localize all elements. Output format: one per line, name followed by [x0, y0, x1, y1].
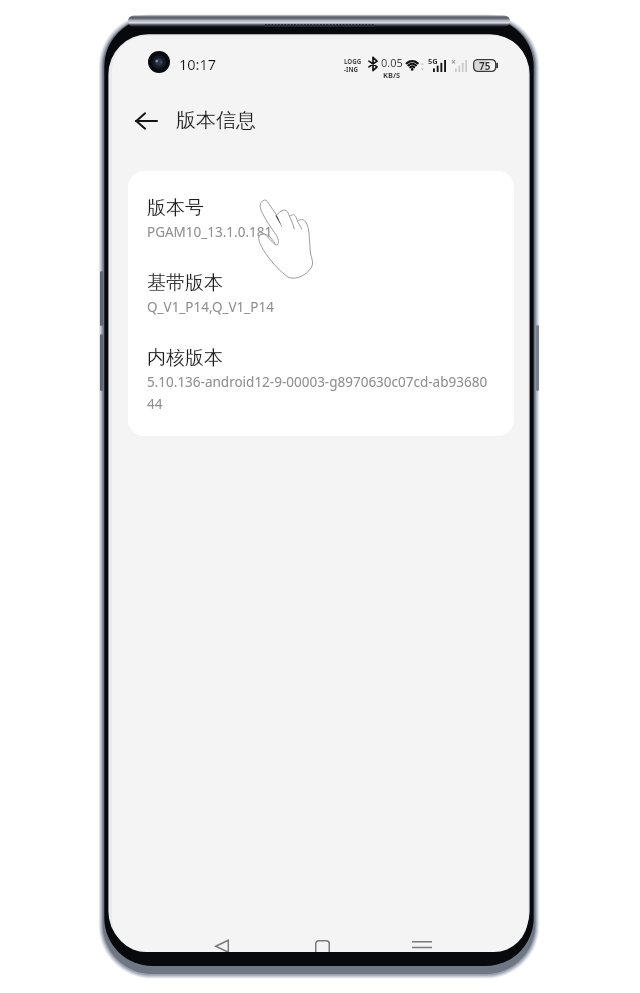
button[interactable]: Home: [300, 927, 344, 952]
button[interactable]: 内核版本: [147, 346, 493, 413]
staticText: PGAM10_13.1.0.181: [147, 223, 273, 241]
staticText: KB/S: [383, 70, 401, 80]
staticText: 10:17: [179, 54, 217, 74]
staticText: 5.10.136-android12-9-00003-g8970630c07cd…: [147, 373, 488, 413]
staticText: 0.05: [381, 55, 403, 70]
staticText: Q_V1_P14,Q_V1_P14: [147, 298, 274, 316]
staticText: ×: [451, 56, 456, 68]
button[interactable]: Recent apps: [400, 927, 444, 952]
button[interactable]: 版本号: [147, 196, 493, 241]
button[interactable]: 基带版本: [147, 271, 493, 316]
staticText: 基带版本: [147, 271, 223, 295]
staticText: -ING: [344, 65, 358, 73]
button[interactable]: Back: [200, 927, 244, 952]
button[interactable]: Back: [123, 98, 169, 144]
staticText: LOGG: [344, 57, 362, 65]
staticText: 内核版本: [147, 346, 223, 370]
staticText: 5G: [428, 56, 438, 66]
staticText: 75: [479, 59, 491, 72]
staticText: 版本信息: [176, 108, 256, 133]
staticText: 版本号: [147, 196, 204, 220]
